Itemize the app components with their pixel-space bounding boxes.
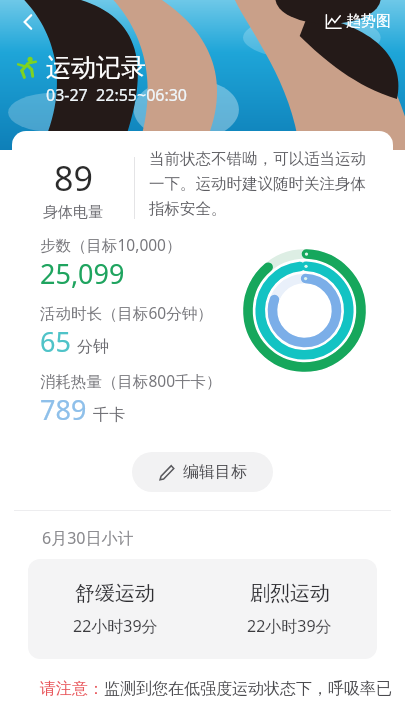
staticText: 6月30日小计 [42, 527, 134, 549]
staticText: 监测到您在低强度运动状态下，呼吸率已 [104, 679, 392, 699]
staticText: 活动时长（目标60分钟） [40, 302, 213, 323]
staticText: 请注意： [40, 679, 104, 699]
staticText: 步数（目标10,000） [40, 234, 182, 255]
staticText: 89 [54, 155, 93, 201]
staticText: 65 [40, 323, 71, 360]
staticText: 22小时39分 [73, 615, 158, 637]
button[interactable]: 趋势图 [321, 8, 395, 35]
staticText: 趋势图 [346, 12, 391, 31]
staticText: 分钟 [77, 337, 109, 357]
staticText: 运动记录 [46, 52, 146, 83]
staticText: 25,099 [40, 255, 125, 292]
staticText: 03-27 22:55~06:30 [46, 84, 188, 106]
staticText: 当前状态不错呦，可以适当运动一下。运动时建议随时关注身体指标安全。 [149, 149, 379, 218]
button[interactable]: 舒缓运动 [28, 581, 202, 637]
staticText: 身体电量 [43, 203, 103, 222]
button[interactable]: Back [8, 2, 48, 42]
staticText: 编辑目标 [183, 462, 247, 482]
button[interactable]: 剧烈运动 [202, 581, 377, 637]
staticText: 剧烈运动 [250, 581, 330, 606]
staticText: 789 [40, 391, 87, 428]
staticText: 22小时39分 [247, 615, 332, 637]
button[interactable]: 编辑目标 [132, 452, 273, 492]
staticText: 舒缓运动 [75, 581, 155, 606]
staticText: 千卡 [93, 405, 125, 425]
staticText: 消耗热量（目标800千卡） [40, 370, 222, 391]
